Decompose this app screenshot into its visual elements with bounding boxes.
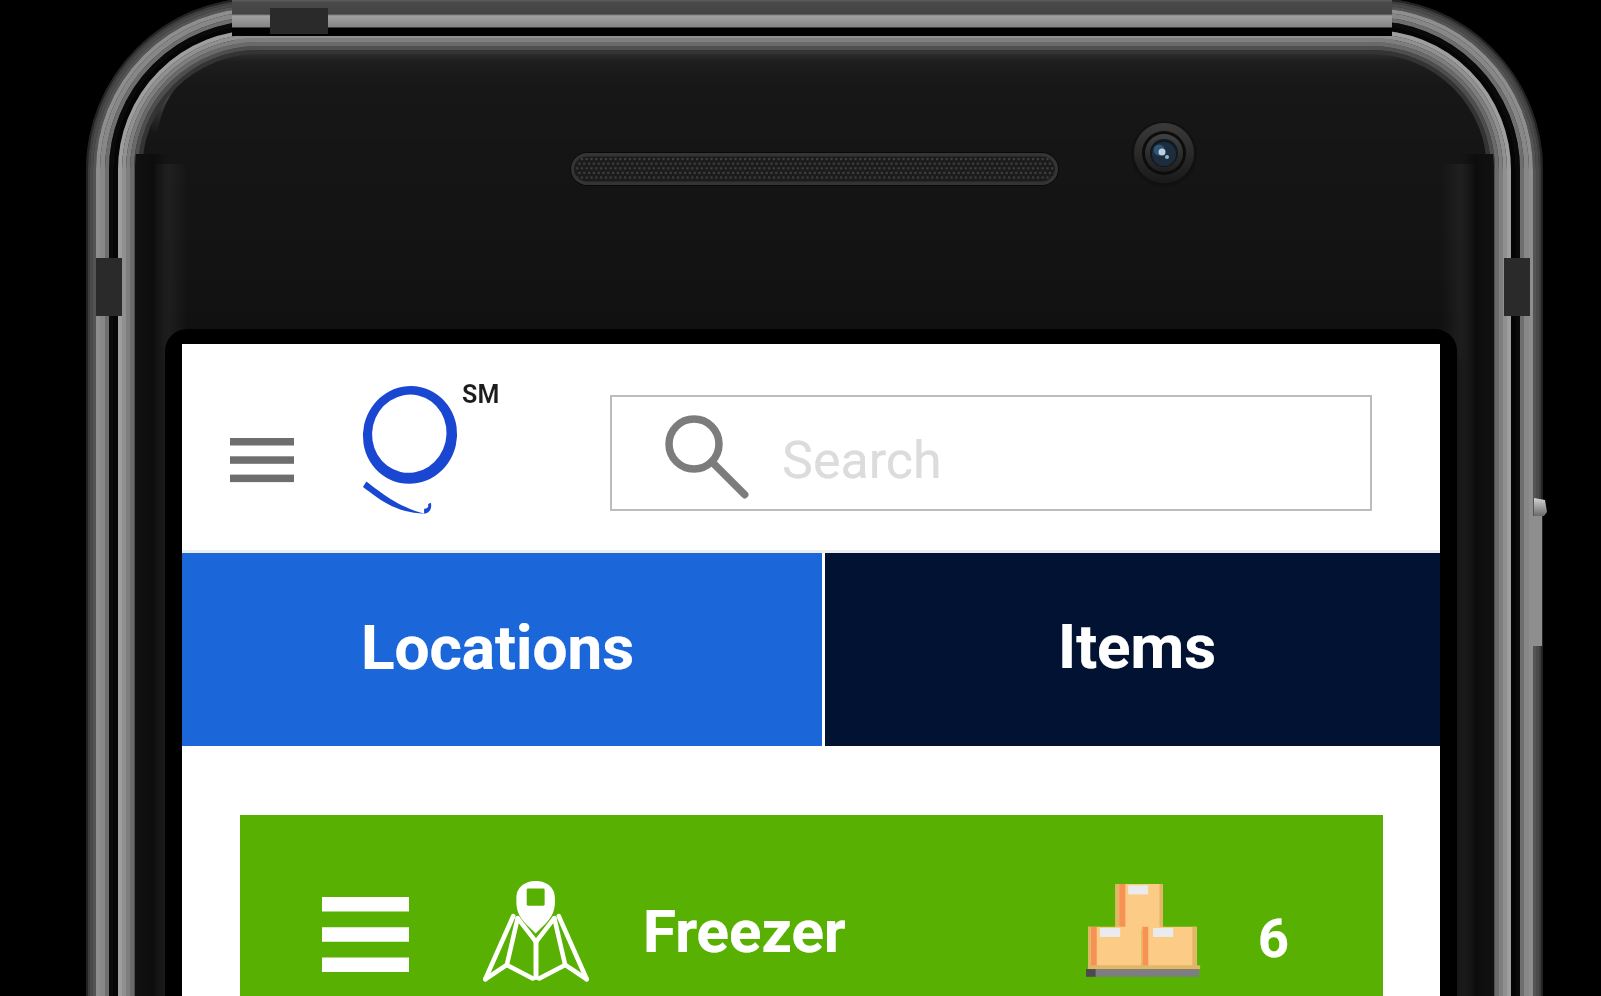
- button[interactable]: Search: [610, 395, 1372, 511]
- staticText: Items: [1058, 610, 1217, 683]
- button[interactable]: Freezer: [240, 815, 1383, 996]
- staticText: Freezer: [643, 896, 846, 966]
- button[interactable]: Menu: [212, 418, 312, 500]
- button[interactable]: Items: [825, 553, 1440, 746]
- staticText: Search: [782, 430, 942, 491]
- staticText: Locations: [361, 611, 635, 684]
- staticText: 6: [1258, 907, 1289, 970]
- button[interactable]: Locations: [182, 553, 822, 746]
- staticText: SM: [462, 380, 500, 409]
